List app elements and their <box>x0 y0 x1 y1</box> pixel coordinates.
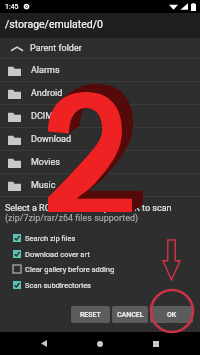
button[interactable]: Movies <box>0 151 200 174</box>
staticText: OK <box>167 311 177 319</box>
staticText: Clear gallery before adding <box>25 265 115 274</box>
staticText: 1:45 <box>5 3 19 11</box>
button[interactable]: Clear gallery before adding <box>0 262 200 276</box>
button[interactable]: Search zip files <box>0 231 200 245</box>
button[interactable]: Download cover art <box>0 247 200 261</box>
staticText: Download <box>31 134 72 145</box>
button[interactable]: DCIM <box>0 105 200 128</box>
staticText: DCIM <box>31 111 54 122</box>
staticText: /storage/emulated/0 <box>5 18 103 30</box>
button[interactable]: RESET <box>71 306 110 323</box>
button[interactable]: Music <box>0 174 200 197</box>
staticText: (zip/7zip/rar/z64 files supported) <box>5 213 139 224</box>
staticText: RESET <box>80 311 101 319</box>
staticText: Select a ROM folder and press OK to scan <box>5 203 172 214</box>
button[interactable]: Home <box>88 332 112 355</box>
button[interactable]: Alarms <box>0 59 200 82</box>
staticText: Music <box>31 180 56 191</box>
staticText: CANCEL <box>117 311 144 319</box>
staticText: Parent folder <box>30 43 82 54</box>
button[interactable]: Recent apps <box>144 332 168 355</box>
staticText: Scan subdirectories <box>25 281 91 290</box>
button[interactable]: Scan subdirectories <box>0 278 200 292</box>
button[interactable]: Parent folder <box>0 38 200 59</box>
staticText: Search zip files <box>25 234 76 243</box>
button[interactable]: CANCEL <box>112 306 148 323</box>
button[interactable]: Android <box>0 82 200 105</box>
button[interactable]: Back <box>32 332 56 355</box>
button[interactable]: Download <box>0 128 200 151</box>
staticText: Download cover art <box>25 250 90 259</box>
staticText: Alarms <box>31 65 60 76</box>
staticText: Android <box>31 88 63 99</box>
button[interactable]: OK <box>150 306 193 323</box>
staticText: Movies <box>31 157 60 168</box>
